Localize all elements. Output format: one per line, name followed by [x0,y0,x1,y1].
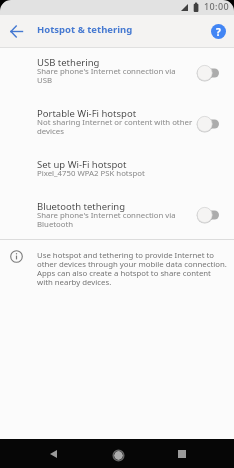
staticText: Use hotspot and tethering to provide Int… [37,250,227,288]
button[interactable]: Bluetooth tethering [0,200,234,232]
staticText: Bluetooth tethering [37,200,126,213]
staticText: 10:00 [204,0,230,12]
staticText: Share phone's Internet connection via Bl… [37,210,176,229]
staticText: Not sharing Internet or content with oth… [37,117,193,136]
staticText: USB tethering [37,56,100,69]
button[interactable]: USB tethering [0,56,234,88]
button[interactable] [6,20,28,42]
staticText: Portable Wi-Fi hotspot [37,107,137,120]
staticText: ? [216,25,221,39]
staticText: Hotspot & tethering [37,23,133,36]
button[interactable]: Portable Wi-Fi hotspot [0,107,234,139]
staticText: Share phone's Internet connection via US… [37,66,176,85]
button[interactable]: Set up Wi-Fi hotspot [0,158,234,182]
button[interactable] [170,442,194,466]
staticText: Set up Wi-Fi hotspot [37,158,127,171]
staticText: Pixel_4750 WPA2 PSK hotspot [37,168,145,179]
button[interactable] [41,442,65,466]
button[interactable] [106,443,130,467]
button[interactable]: ? [211,24,226,39]
